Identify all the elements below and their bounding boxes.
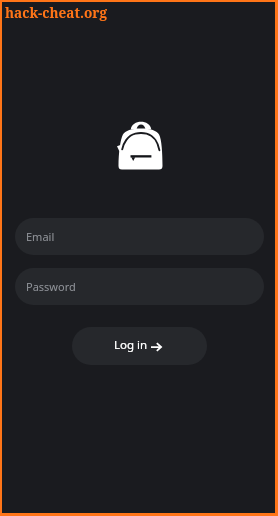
staticText: Email: [26, 229, 55, 244]
other: Backpack logo: [117, 119, 163, 170]
staticText: Password: [26, 279, 76, 294]
staticText: hack-cheat.org: [5, 3, 107, 22]
button[interactable]: Password: [15, 268, 264, 305]
button[interactable]: Log in: [72, 327, 207, 365]
staticText: Log in: [114, 337, 148, 353]
button[interactable]: Email: [15, 218, 264, 255]
